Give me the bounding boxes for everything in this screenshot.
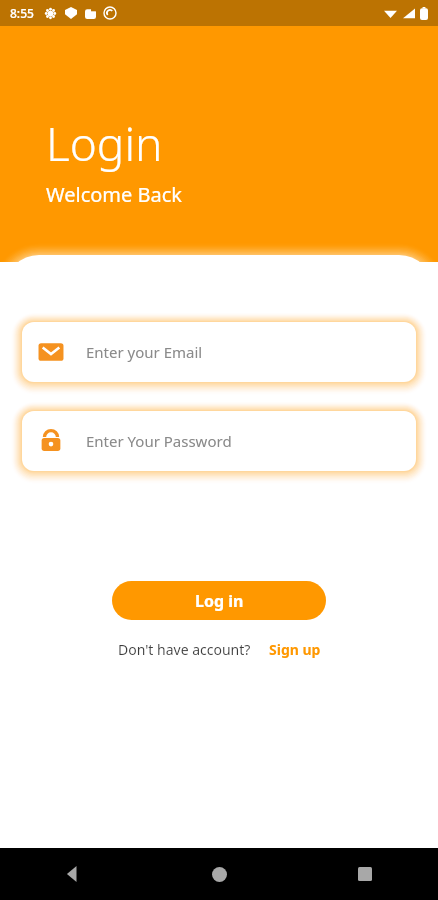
button[interactable]: Enter Your Password: [22, 411, 416, 471]
staticText: Don't have account?: [118, 640, 251, 659]
staticText: Enter Your Password: [86, 431, 232, 451]
button[interactable]: Sign up: [269, 640, 321, 659]
button[interactable]: Home: [146, 848, 292, 900]
button[interactable]: Recent apps: [292, 848, 438, 900]
staticText: 8:55: [10, 5, 34, 21]
button[interactable]: Enter your Email: [22, 322, 416, 382]
staticText: Welcome Back: [46, 181, 183, 208]
staticText: Login: [46, 112, 163, 175]
staticText: Log in: [195, 590, 244, 612]
staticText: Sign up: [269, 640, 321, 659]
button[interactable]: Back: [0, 848, 146, 900]
button[interactable]: Log in: [112, 581, 326, 620]
staticText: Enter your Email: [86, 342, 203, 362]
